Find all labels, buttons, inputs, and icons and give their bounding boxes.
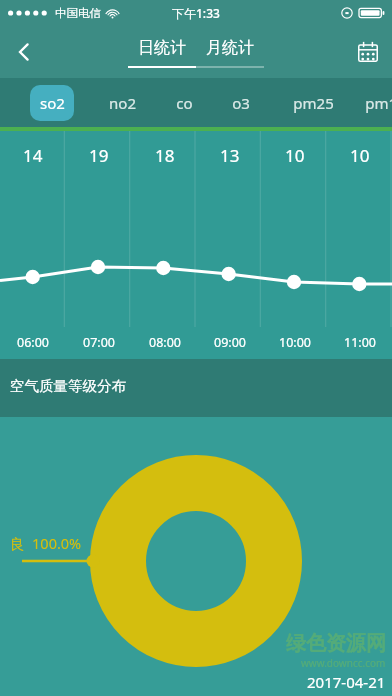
- staticText: 下午1:33: [172, 5, 220, 21]
- staticText: 良 100.0%: [10, 533, 82, 553]
- staticText: 2017-04-21: [307, 672, 386, 692]
- staticText: 14: [23, 144, 43, 167]
- button[interactable]: Back: [0, 28, 48, 76]
- staticText: 06:00: [17, 334, 49, 351]
- button[interactable]: Select date: [344, 28, 392, 76]
- staticText: 绿色资源网: [286, 631, 386, 656]
- staticText: 日统计: [138, 38, 186, 58]
- staticText: 10: [350, 144, 370, 167]
- button[interactable]: co: [153, 85, 215, 121]
- staticText: pm25: [293, 93, 334, 113]
- staticText: 08:00: [149, 334, 181, 351]
- staticText: 10:00: [279, 334, 311, 351]
- staticText: 月统计: [206, 38, 254, 58]
- staticText: www.downcc.com: [301, 656, 386, 670]
- staticText: 18: [155, 144, 175, 167]
- button[interactable]: no2: [91, 85, 153, 121]
- staticText: o3: [232, 93, 250, 113]
- button[interactable]: so2: [30, 85, 74, 121]
- staticText: co: [176, 93, 193, 113]
- staticText: pm10: [365, 93, 392, 113]
- staticText: so2: [40, 93, 65, 113]
- button[interactable]: 月统计: [196, 38, 264, 68]
- button[interactable]: 日统计: [128, 38, 196, 68]
- staticText: no2: [109, 93, 136, 113]
- button[interactable]: pm25: [282, 85, 344, 121]
- staticText: 07:00: [83, 334, 115, 351]
- staticText: 10: [285, 144, 305, 167]
- staticText: 空气质量等级分布: [10, 377, 126, 395]
- staticText: 13: [220, 144, 240, 167]
- button[interactable]: pm10: [354, 85, 392, 121]
- staticText: 19: [89, 144, 109, 167]
- staticText: 中国电信: [55, 6, 101, 20]
- staticText: 11:00: [344, 334, 376, 351]
- button[interactable]: o3: [210, 85, 272, 121]
- staticText: 09:00: [214, 334, 246, 351]
